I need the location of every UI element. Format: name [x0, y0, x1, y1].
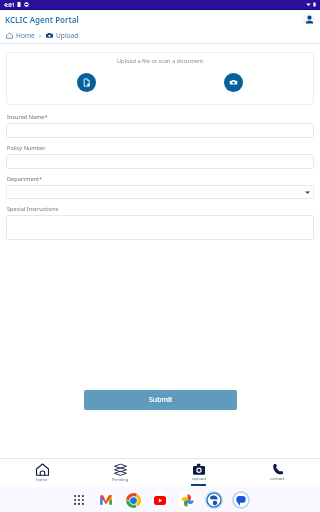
- staticText: ›: [39, 31, 42, 40]
- staticText: KCLIC Agent Portal: [5, 14, 79, 25]
- button[interactable]: Upload file: [77, 73, 96, 92]
- staticText: Special Instructions: [7, 205, 59, 213]
- button[interactable]: Photos: [178, 491, 196, 509]
- staticText: home: [36, 477, 48, 483]
- staticText: 4:01: [4, 1, 15, 8]
- button[interactable]: Pending: [81, 459, 159, 487]
- button[interactable]: [6, 123, 314, 138]
- button[interactable]: Upload: [46, 31, 79, 40]
- staticText: Home: [16, 31, 35, 40]
- button[interactable]: YouTube: [151, 491, 169, 509]
- button[interactable]: upload: [159, 459, 238, 487]
- button[interactable]: Earth: [205, 491, 223, 509]
- button[interactable]: [6, 154, 314, 169]
- button[interactable]: contact: [238, 459, 317, 487]
- button[interactable]: home: [3, 459, 81, 487]
- staticText: Insured Name*: [7, 113, 48, 121]
- staticText: contact: [270, 476, 285, 482]
- staticText: Pending: [112, 477, 129, 483]
- button[interactable]: Home: [6, 31, 35, 40]
- staticText: upload: [192, 476, 206, 482]
- button[interactable]: [6, 185, 314, 199]
- staticText: Upload: [56, 31, 79, 40]
- button[interactable]: Messages: [232, 491, 250, 509]
- staticText: Upload a file or scan a document: [117, 57, 204, 65]
- button[interactable]: All apps: [70, 491, 88, 509]
- button[interactable]: Account: [303, 13, 315, 25]
- staticText: Department*: [7, 175, 43, 183]
- button[interactable]: [6, 215, 314, 240]
- button[interactable]: Scan document: [224, 73, 243, 92]
- button[interactable]: Submit: [84, 390, 237, 410]
- staticText: Submit: [149, 395, 173, 405]
- button[interactable]: Gmail: [97, 491, 115, 509]
- button[interactable]: Chrome: [124, 491, 142, 509]
- staticText: Policy Number: [7, 144, 46, 152]
